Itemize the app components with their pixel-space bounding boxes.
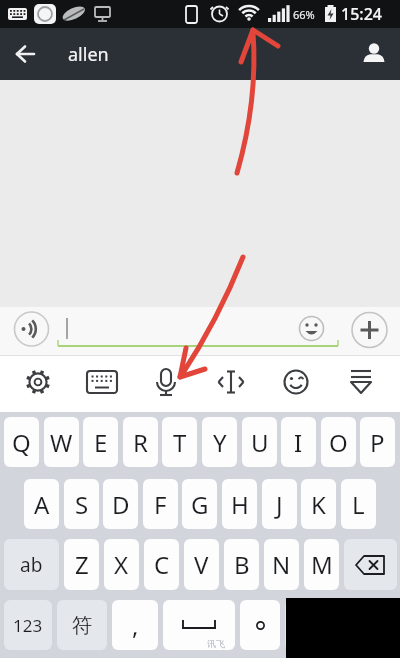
staticText: O (329, 426, 348, 459)
button[interactable]: K (301, 479, 336, 529)
staticText: K (311, 488, 326, 521)
staticText: , (132, 609, 139, 642)
staticText: S (75, 488, 89, 521)
staticText: V (194, 548, 209, 581)
button[interactable]: H (222, 479, 257, 529)
button[interactable]: W (44, 417, 79, 467)
staticText: T (173, 426, 187, 459)
button[interactable]: F (143, 479, 178, 529)
staticText: 123 (13, 614, 43, 637)
staticText: B (234, 548, 250, 581)
staticText: X (114, 548, 129, 581)
button[interactable]: , (112, 600, 158, 650)
button[interactable]: R (123, 417, 158, 467)
button[interactable]: E (83, 417, 118, 467)
button[interactable]: P (360, 417, 395, 467)
button[interactable] (0, 355, 66, 412)
staticText: N (272, 548, 291, 581)
staticText: Z (75, 548, 89, 581)
staticText: A (34, 488, 50, 521)
staticText: Y (213, 426, 227, 459)
staticText: R (133, 426, 148, 459)
button[interactable]: A (24, 479, 59, 529)
staticText: C (154, 548, 170, 581)
button[interactable] (240, 600, 280, 650)
button[interactable]: N (264, 539, 299, 590)
button[interactable]: Z (64, 539, 99, 590)
staticText: D (112, 488, 130, 521)
button[interactable] (132, 355, 199, 412)
button[interactable]: O (321, 417, 356, 467)
button[interactable]: Y (202, 417, 237, 467)
button[interactable]: B (224, 539, 259, 590)
staticText: M (311, 548, 333, 581)
button[interactable]: 符 (57, 600, 107, 650)
button[interactable]: U (242, 417, 277, 467)
staticText: Q (12, 426, 31, 459)
button[interactable] (66, 355, 132, 412)
staticText: 66% (293, 7, 315, 22)
staticText: ab (20, 552, 43, 578)
button[interactable] (62, 307, 304, 355)
staticText: 讯飞 (207, 638, 225, 649)
button[interactable]: X (104, 539, 139, 590)
button[interactable]: ab (4, 539, 59, 590)
button[interactable]: 讯飞 (163, 600, 235, 650)
button[interactable]: Q (4, 417, 39, 467)
staticText: F (154, 488, 167, 521)
button[interactable] (285, 600, 340, 650)
button[interactable] (348, 28, 400, 80)
staticText: allen (68, 42, 109, 67)
button[interactable]: J (262, 479, 297, 529)
button[interactable]: I (281, 417, 316, 467)
button[interactable] (0, 28, 52, 80)
staticText: I (294, 426, 303, 459)
button[interactable] (348, 307, 400, 355)
button[interactable] (333, 355, 400, 412)
staticText: H (231, 488, 249, 521)
staticText: P (370, 426, 385, 459)
staticText: G (191, 488, 209, 521)
staticText: 15:24 (341, 3, 382, 25)
button[interactable]: L (341, 479, 376, 529)
button[interactable]: G (182, 479, 217, 529)
staticText: L (352, 488, 365, 521)
button[interactable] (304, 307, 348, 355)
staticText: W (50, 426, 73, 459)
staticText: J (276, 488, 283, 521)
button[interactable]: V (184, 539, 219, 590)
button[interactable] (199, 355, 266, 412)
button[interactable]: D (103, 479, 138, 529)
button[interactable]: M (304, 539, 339, 590)
button[interactable] (0, 307, 62, 355)
button[interactable] (344, 539, 397, 590)
staticText: U (251, 426, 269, 459)
staticText: E (94, 426, 108, 459)
button[interactable]: 123 (4, 600, 52, 650)
staticText: 符 (72, 613, 92, 638)
button[interactable]: C (144, 539, 179, 590)
button[interactable]: S (64, 479, 99, 529)
button[interactable]: T (162, 417, 197, 467)
button[interactable] (266, 355, 333, 412)
